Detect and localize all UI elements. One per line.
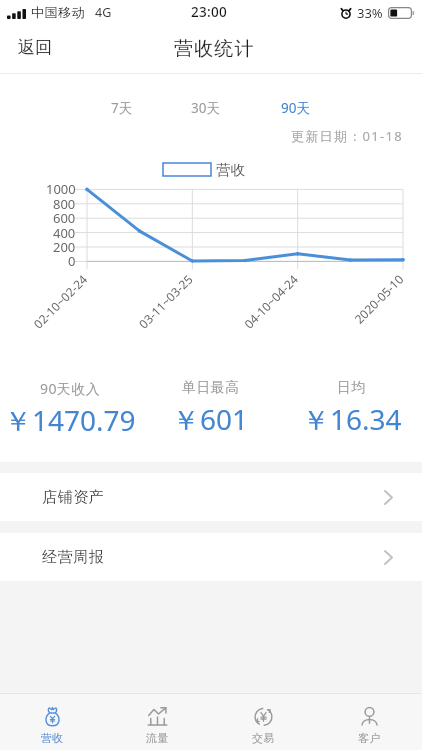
button[interactable]: 客户 [316,694,422,745]
button[interactable]: 30天 [179,90,232,124]
staticText: 单日最高 [182,379,240,397]
button[interactable]: 交易 [210,694,316,745]
staticText: 返回 [18,37,52,58]
button[interactable]: 营收 [0,694,105,745]
staticText: ￥601 [172,400,249,438]
staticText: ￥1470.79 [4,401,136,439]
button[interactable]: 经营周报 [0,533,422,581]
staticText: 4G [95,4,112,21]
staticText: 经营周报 [42,548,105,567]
staticText: 流量 [146,731,169,745]
staticText: 23:00 [191,3,227,21]
button[interactable]: 返回 [0,28,72,73]
staticText: 客户 [358,731,381,745]
staticText: 90天 [281,99,310,115]
staticText: 中国移动 [31,4,86,20]
staticText: 营收 [216,161,245,179]
button[interactable]: 7天 [99,90,145,124]
staticText: 日均 [337,379,366,397]
button[interactable]: 店铺资产 [0,473,422,521]
staticText: 店铺资产 [42,488,105,507]
staticText: 营收 [41,731,64,745]
staticText: 交易 [252,731,275,745]
staticText: 30天 [191,99,220,115]
staticText: 7天 [111,99,133,115]
button[interactable]: 90天 [269,90,322,124]
staticText: 更新日期：01-18 [291,127,403,145]
staticText: 90天收入 [40,379,101,398]
button[interactable]: 流量 [105,694,210,745]
staticText: ￥16.34 [302,400,402,438]
staticText: 营收统计 [174,37,255,61]
staticText: 33% [357,4,383,22]
